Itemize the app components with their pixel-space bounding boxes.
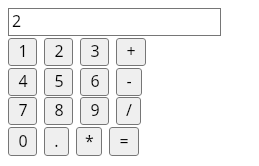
button[interactable]: 9 (80, 97, 109, 125)
staticText: + (126, 40, 136, 62)
staticText: 6 (90, 70, 100, 92)
button[interactable]: 6 (80, 68, 109, 96)
button[interactable]: 2 (8, 8, 221, 36)
staticText: 0 (18, 130, 28, 152)
staticText: . (54, 130, 59, 152)
button[interactable]: 2 (44, 38, 73, 66)
button[interactable]: 7 (8, 97, 37, 125)
button[interactable]: * (76, 127, 102, 156)
button[interactable]: 5 (44, 68, 73, 96)
staticText: 5 (54, 70, 64, 92)
staticText: 4 (18, 70, 28, 92)
staticText: 2 (54, 40, 64, 62)
staticText: 1 (18, 40, 28, 62)
button[interactable]: 8 (44, 97, 73, 125)
staticText: 3 (90, 40, 100, 62)
button[interactable]: 4 (8, 68, 37, 96)
button[interactable]: + (116, 38, 146, 66)
button[interactable]: 1 (8, 38, 37, 66)
staticText: 7 (18, 99, 28, 121)
staticText: = (119, 130, 129, 152)
button[interactable]: . (44, 127, 69, 156)
button[interactable]: - (116, 68, 142, 96)
staticText: 9 (90, 99, 100, 121)
button[interactable]: 3 (80, 38, 109, 66)
staticText: * (85, 130, 94, 152)
button[interactable]: 0 (8, 127, 37, 156)
staticText: / (126, 99, 132, 121)
staticText: 8 (54, 99, 64, 121)
button[interactable]: / (116, 97, 141, 125)
staticText: - (126, 70, 132, 92)
button[interactable]: = (109, 127, 139, 156)
staticText: 2 (12, 10, 22, 32)
